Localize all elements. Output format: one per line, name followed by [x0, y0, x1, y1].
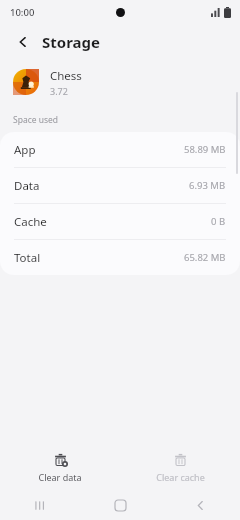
staticText: 3.72: [50, 85, 68, 97]
staticText: Space used: [13, 114, 59, 126]
staticText: 0 B: [211, 215, 226, 228]
staticText: 58.89 MB: [184, 143, 226, 156]
staticText: Clear data: [38, 471, 82, 483]
button[interactable]: App: [0, 132, 240, 167]
staticText: Chess: [50, 68, 82, 84]
button[interactable]: Recent apps: [0, 490, 80, 520]
staticText: Storage: [42, 32, 100, 52]
button[interactable]: Clear cache: [120, 446, 240, 483]
button[interactable]: Clear data: [0, 446, 120, 483]
staticText: 65.82 MB: [184, 251, 226, 264]
staticText: Total: [14, 250, 41, 266]
button[interactable]: Back: [160, 490, 240, 520]
button[interactable]: Home: [80, 490, 160, 520]
button[interactable]: Data: [0, 168, 240, 203]
button[interactable]: Back: [10, 29, 36, 55]
staticText: 10:00: [10, 6, 35, 19]
button[interactable]: Cache: [0, 204, 240, 239]
staticText: Cache: [14, 214, 47, 230]
staticText: Data: [14, 178, 40, 194]
staticText: App: [14, 142, 36, 158]
staticText: 6.93 MB: [189, 179, 226, 192]
staticText: Clear cache: [156, 471, 205, 483]
button[interactable]: Total: [0, 240, 240, 275]
